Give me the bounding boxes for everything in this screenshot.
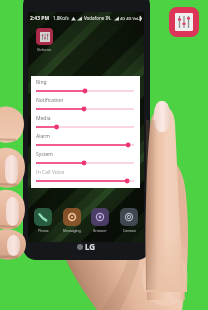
staticText: Vodafone IN. bbox=[84, 15, 112, 21]
button[interactable]: Volume Control app bbox=[36, 28, 53, 45]
button[interactable]: In Call Voice bbox=[36, 168, 136, 186]
button[interactable]: Media bbox=[36, 114, 136, 132]
button[interactable]: Phone bbox=[34, 208, 52, 226]
button[interactable]: Ring bbox=[36, 78, 136, 96]
staticText: Camera bbox=[123, 228, 136, 233]
button[interactable]: Browser bbox=[91, 208, 109, 226]
staticText: 2:43 PM bbox=[30, 15, 50, 22]
staticText: 4G 4G VoL bbox=[120, 16, 140, 21]
button[interactable]: System bbox=[36, 150, 136, 168]
staticText: 1.8Ko/s bbox=[53, 15, 69, 21]
button[interactable]: Alarm bbox=[36, 132, 136, 150]
staticText: Volume bbox=[37, 47, 52, 52]
staticText: Notification bbox=[36, 97, 64, 104]
staticText: Browser bbox=[93, 228, 107, 233]
button[interactable]: Camera bbox=[120, 208, 138, 226]
button[interactable]: Messaging bbox=[63, 208, 81, 226]
staticText: Alarm bbox=[36, 133, 51, 140]
staticText: Phone bbox=[38, 228, 49, 233]
button[interactable]: Notification bbox=[36, 96, 136, 114]
staticText: In Call Voice bbox=[36, 169, 65, 176]
staticText: System bbox=[36, 151, 53, 158]
button[interactable]: Volume Control app icon bbox=[169, 7, 199, 37]
staticText: Ring bbox=[36, 79, 47, 86]
staticText: LG bbox=[85, 241, 96, 252]
staticText: Messaging bbox=[63, 228, 81, 233]
staticText: Media bbox=[36, 115, 51, 122]
